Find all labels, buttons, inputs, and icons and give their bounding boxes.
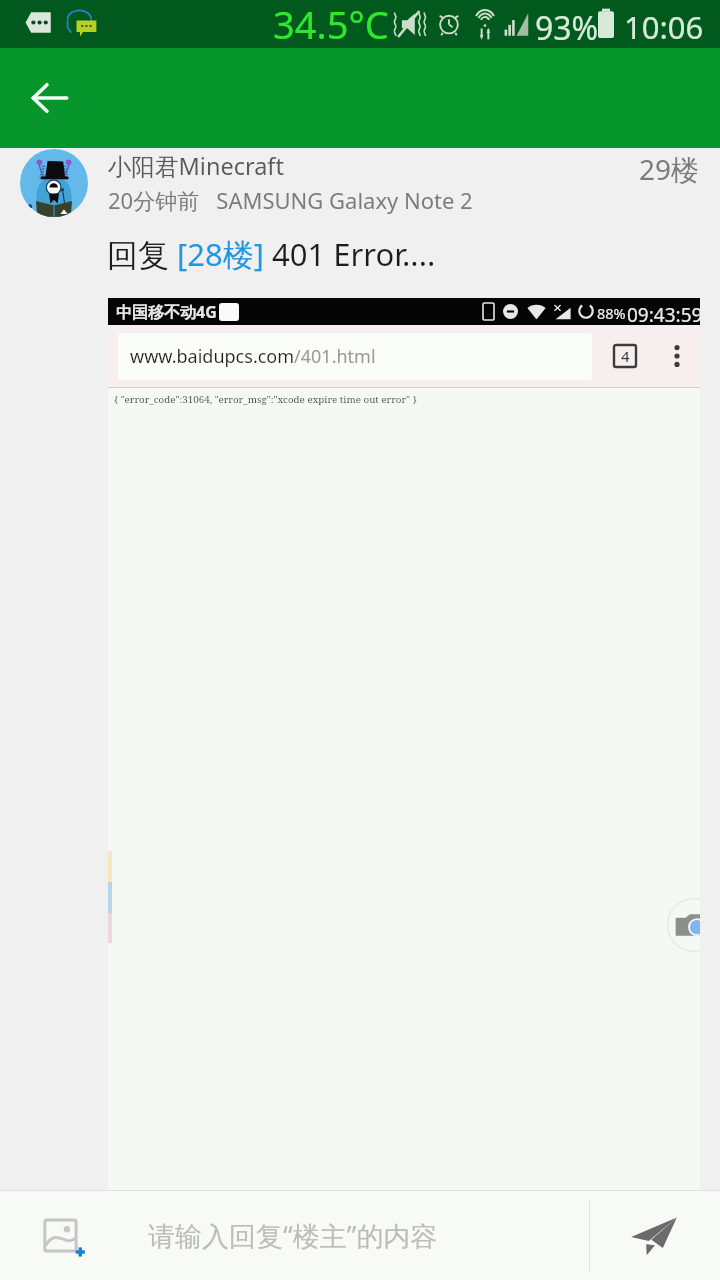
button[interactable]: More options: [664, 341, 690, 371]
staticText: www.baidupcs.com/401.html: [130, 344, 376, 369]
button[interactable]: 请输入回复“楼主”的内容: [125, 1191, 589, 1280]
staticText: 回复 [28楼] 401 Error....: [107, 233, 436, 275]
staticText: 88%: [597, 303, 626, 323]
button[interactable]: Back: [14, 68, 86, 128]
button[interactable]: [20, 149, 88, 217]
button[interactable]: Add image: [0, 1191, 125, 1280]
staticText: 中国移不动4G: [116, 301, 217, 323]
staticText: 93%: [535, 6, 599, 50]
staticText: { "error_code":31064, "error_msg":"xcode…: [114, 393, 417, 406]
staticText: 4: [621, 346, 630, 366]
staticText: 09:43:59: [627, 302, 700, 325]
staticText: 34.5°C: [273, 0, 389, 46]
button[interactable]: Send: [590, 1191, 720, 1280]
staticText: 小阳君Minecraft: [108, 150, 284, 182]
button[interactable]: Tabs: [614, 345, 636, 367]
staticText: 请输入回复“楼主”的内容: [148, 1217, 438, 1254]
staticText: 29楼: [639, 150, 700, 188]
staticText: 10:06: [624, 6, 704, 48]
button[interactable]: www.baidupcs.com/401.html: [118, 333, 592, 380]
staticText: 20分钟前 SAMSUNG Galaxy Note 2: [108, 185, 473, 215]
